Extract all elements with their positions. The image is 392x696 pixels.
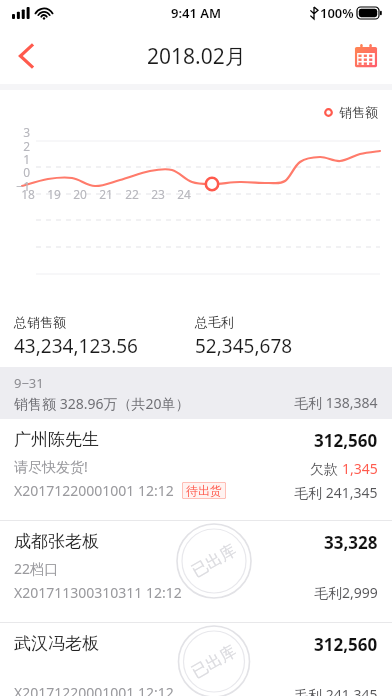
staticText: 24: [173, 186, 195, 202]
staticText: X20171220001001 12:12: [14, 683, 174, 696]
staticText: 武汉冯老板: [14, 633, 99, 654]
staticText: 9−31: [14, 374, 44, 392]
staticText: 312,560: [314, 429, 378, 452]
staticText: 已出库: [188, 641, 240, 683]
staticText: 0: [8, 164, 30, 180]
staticText: 总毛利: [195, 314, 234, 330]
staticText: 3: [8, 124, 30, 140]
staticText: −1: [8, 178, 30, 194]
staticText: 销售额: [339, 104, 378, 120]
button[interactable]: Back: [0, 30, 52, 82]
staticText: 广州陈先生: [14, 429, 99, 450]
staticText: 9:41 AM: [171, 4, 222, 22]
staticText: 总销售额: [14, 314, 66, 330]
staticText: 52,345,678: [195, 333, 293, 359]
staticText: 20: [69, 186, 91, 202]
button[interactable]: 已出库: [0, 521, 392, 622]
staticText: 毛利 138,384: [294, 393, 378, 412]
staticText: 21: [95, 186, 117, 202]
staticText: 欠款: [310, 459, 342, 478]
staticText: X20171220001001 12:12: [14, 481, 174, 500]
staticText: 312,560: [314, 633, 378, 656]
staticText: 2018.02月: [147, 42, 246, 71]
button[interactable]: 9−31: [0, 367, 392, 419]
staticText: 成都张老板: [14, 531, 99, 552]
staticText: 100%: [320, 4, 354, 22]
staticText: 已出库: [188, 540, 240, 582]
staticText: 2: [8, 138, 30, 154]
staticText: 毛利 241,345: [294, 685, 378, 696]
button[interactable]: 广州陈先生: [0, 419, 392, 520]
staticText: X201711300310311 12:12: [14, 583, 182, 602]
staticText: 19: [43, 186, 65, 202]
staticText: 请尽快发货!: [14, 457, 88, 476]
staticText: 毛利2,999: [314, 583, 378, 602]
staticText: 1,345: [342, 459, 378, 478]
staticText: 毛利 241,345: [294, 483, 378, 502]
staticText: 18: [17, 186, 39, 202]
staticText: 22档口: [14, 559, 59, 578]
staticText: 23: [147, 186, 169, 202]
staticText: 43,234,123.56: [14, 333, 138, 359]
staticText: 22: [121, 186, 143, 202]
staticText: 1: [8, 151, 30, 167]
button[interactable]: Calendar: [340, 30, 392, 82]
staticText: 待出货: [186, 483, 222, 498]
staticText: 33,328: [324, 531, 378, 554]
staticText: 销售额 328.96万（共20单）: [14, 394, 190, 413]
button[interactable]: 已出库: [0, 623, 392, 696]
